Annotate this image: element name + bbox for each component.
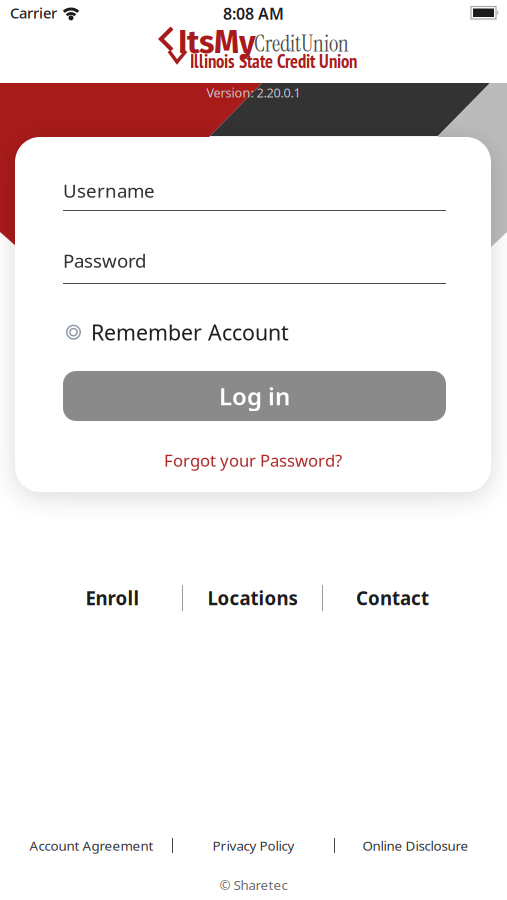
staticText: Log in bbox=[219, 380, 290, 412]
button[interactable]: Forgot your Password? bbox=[164, 449, 342, 472]
staticText: Illinois State Credit Union bbox=[190, 49, 357, 73]
textField[interactable]: Username bbox=[63, 178, 446, 203]
button[interactable]: Enroll bbox=[43, 586, 182, 610]
staticText: CreditUnion bbox=[254, 29, 349, 58]
staticText: Enroll bbox=[85, 586, 139, 610]
button[interactable]: Remember Account bbox=[66, 318, 289, 346]
staticText: 8:08 AM bbox=[223, 3, 284, 24]
button[interactable]: Privacy Policy bbox=[173, 837, 334, 854]
button[interactable]: Log in bbox=[63, 371, 446, 421]
staticText: Online Disclosure bbox=[362, 837, 468, 854]
button[interactable]: Contact bbox=[323, 586, 462, 610]
staticText: © Sharetec bbox=[219, 876, 287, 894]
staticText: Locations bbox=[207, 586, 297, 610]
staticText: ItsMy bbox=[178, 23, 256, 61]
staticText: Account Agreement bbox=[29, 837, 153, 854]
staticText: Remember Account bbox=[91, 318, 289, 346]
staticText: Privacy Policy bbox=[212, 837, 294, 854]
staticText: Password bbox=[63, 248, 146, 273]
button[interactable]: Account Agreement bbox=[11, 837, 172, 854]
button[interactable]: Online Disclosure bbox=[335, 837, 496, 854]
button[interactable]: Locations bbox=[183, 586, 322, 610]
staticText: Version: 2.20.0.1 bbox=[206, 84, 300, 101]
staticText: Forgot your Password? bbox=[164, 449, 342, 472]
staticText: Username bbox=[63, 178, 155, 203]
staticText: Contact bbox=[356, 586, 429, 610]
textField[interactable]: Password bbox=[63, 248, 446, 273]
staticText: Carrier bbox=[10, 3, 57, 22]
